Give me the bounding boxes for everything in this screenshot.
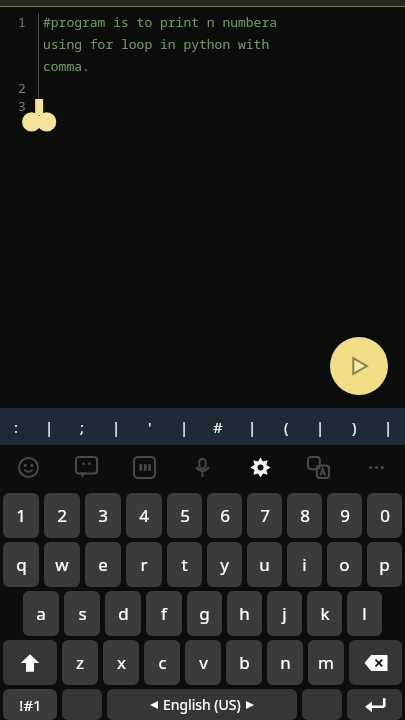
staticText: v <box>199 651 208 674</box>
button[interactable]: v <box>185 640 221 685</box>
staticText: 0 <box>380 504 390 527</box>
button[interactable]: s <box>64 591 100 636</box>
staticText: l <box>362 602 367 625</box>
button[interactable]: r <box>126 542 162 587</box>
button[interactable]: h <box>227 591 262 636</box>
button[interactable]: g <box>187 591 222 636</box>
staticText: i <box>302 553 307 576</box>
button[interactable]: | <box>167 408 201 445</box>
staticText: g <box>199 602 210 625</box>
staticText: 1 <box>16 504 26 527</box>
button[interactable]: | <box>303 408 337 445</box>
button[interactable]: y <box>207 542 242 587</box>
button[interactable]: !#1 <box>3 689 57 720</box>
button[interactable]: Stickers <box>57 445 115 489</box>
staticText: b <box>239 651 250 674</box>
staticText: h <box>239 602 250 625</box>
button[interactable]: 4 <box>126 493 162 538</box>
button[interactable]: ( <box>269 408 303 445</box>
button[interactable]: ; <box>66 408 99 445</box>
button[interactable]: d <box>105 591 141 636</box>
button[interactable]: 0 <box>367 493 402 538</box>
staticText: d <box>118 602 129 625</box>
button[interactable]: ) <box>337 408 371 445</box>
button[interactable]: ' <box>133 408 167 445</box>
staticText: : <box>14 417 19 437</box>
button[interactable]: English (US) <box>107 689 297 720</box>
staticText: 8 <box>300 504 310 527</box>
button[interactable]: Emoji <box>0 445 57 489</box>
button[interactable]: | <box>235 408 269 445</box>
button[interactable]: a <box>23 591 59 636</box>
staticText: 9 <box>340 504 350 527</box>
button[interactable]: m <box>308 640 344 685</box>
button[interactable]: GIF <box>115 445 173 489</box>
button[interactable]: More options <box>347 445 405 489</box>
button[interactable]: Shift <box>3 640 57 685</box>
button[interactable]: 1 <box>3 493 39 538</box>
staticText: English (US) <box>163 695 241 714</box>
staticText: 3 <box>98 504 108 527</box>
button[interactable]: # <box>201 408 235 445</box>
button[interactable]: f <box>146 591 182 636</box>
button[interactable]: Backspace <box>349 640 402 685</box>
staticText: ' <box>148 417 152 437</box>
button[interactable]: 5 <box>167 493 202 538</box>
staticText: | <box>316 417 325 437</box>
button[interactable]: n <box>267 640 303 685</box>
button[interactable]: u <box>247 542 282 587</box>
button[interactable]: : <box>0 408 33 445</box>
button[interactable]: 2 <box>44 493 80 538</box>
staticText: 2 <box>18 79 26 97</box>
staticText: 3 <box>18 97 26 115</box>
staticText: 5 <box>180 504 190 527</box>
staticText: !#1 <box>19 695 42 715</box>
staticText: c <box>158 651 167 674</box>
button[interactable]: | <box>371 408 405 445</box>
button[interactable]: Period <box>302 689 342 720</box>
button[interactable]: | <box>33 408 66 445</box>
button[interactable]: 7 <box>247 493 282 538</box>
staticText: 1 <box>18 13 26 31</box>
staticText: u <box>259 553 270 576</box>
button[interactable]: Run <box>330 337 388 395</box>
button[interactable]: | <box>99 408 133 445</box>
button[interactable]: j <box>267 591 302 636</box>
button[interactable]: q <box>3 542 39 587</box>
button[interactable]: Voice input <box>173 445 231 489</box>
staticText: 7 <box>260 504 270 527</box>
staticText: k <box>320 602 330 625</box>
staticText: | <box>384 417 393 437</box>
button[interactable]: e <box>85 542 121 587</box>
button[interactable]: w <box>44 542 80 587</box>
button[interactable]: Enter <box>347 689 402 720</box>
staticText: e <box>98 553 108 576</box>
staticText: ; <box>80 417 85 437</box>
staticText: # <box>213 417 223 437</box>
staticText: o <box>339 553 350 576</box>
button[interactable]: p <box>367 542 402 587</box>
staticText: p <box>379 553 390 576</box>
button[interactable]: o <box>327 542 362 587</box>
button[interactable]: i <box>287 542 322 587</box>
button[interactable]: Translate <box>289 445 347 489</box>
button[interactable]: x <box>103 640 139 685</box>
button[interactable]: z <box>62 640 98 685</box>
button[interactable]: 6 <box>207 493 242 538</box>
staticText: z <box>76 651 84 674</box>
button[interactable]: t <box>167 542 202 587</box>
staticText: t <box>181 553 188 576</box>
button[interactable]: b <box>226 640 262 685</box>
staticText: | <box>248 417 257 437</box>
staticText: y <box>220 553 229 576</box>
button[interactable]: 9 <box>327 493 362 538</box>
button[interactable]: Comma <box>62 689 102 720</box>
button[interactable]: c <box>144 640 180 685</box>
button[interactable]: k <box>307 591 342 636</box>
button[interactable]: l <box>347 591 382 636</box>
staticText: r <box>140 553 148 576</box>
button[interactable]: 3 <box>85 493 121 538</box>
button[interactable]: Settings <box>231 445 289 489</box>
staticText: | <box>180 417 189 437</box>
button[interactable]: 8 <box>287 493 322 538</box>
